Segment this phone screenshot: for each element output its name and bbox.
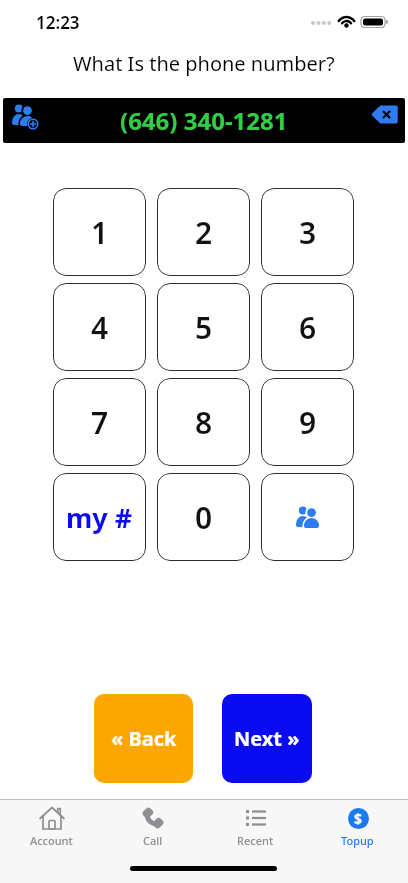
staticText: Account [30,833,73,848]
staticText: 3 [299,212,317,253]
button[interactable]: Next » [222,694,312,783]
button[interactable]: « Back [94,694,193,783]
staticText: (646) 340-1281 [120,104,288,137]
button[interactable] [3,98,53,143]
button[interactable]: Recent [204,800,306,883]
button[interactable]: $ [306,800,408,883]
button[interactable]: 7 [53,378,146,466]
staticText: my # [66,499,133,536]
staticText: Next » [234,725,300,752]
button[interactable]: 8 [157,378,250,466]
staticText: What Is the phone number? [73,50,335,77]
staticText: 5 [195,307,213,348]
staticText: 8 [195,402,213,443]
staticText: $ [354,809,363,828]
button[interactable]: 9 [261,378,354,466]
button[interactable]: 3 [261,188,354,276]
staticText: 1 [91,212,109,253]
staticText: Topup [341,833,374,848]
staticText: 9 [299,402,317,443]
button[interactable]: Account [0,800,102,883]
button[interactable]: Call [102,800,204,883]
staticText: 2 [195,212,213,253]
staticText: 0 [195,497,213,538]
staticText: « Back [111,725,177,752]
button[interactable] [361,98,405,143]
button[interactable]: 6 [261,283,354,371]
staticText: Recent [237,833,274,848]
staticText: Call [143,833,163,848]
staticText: 12:23 [36,11,80,34]
staticText: 6 [299,307,317,348]
staticText: 4 [91,307,109,348]
button[interactable]: 2 [157,188,250,276]
staticText: 7 [91,402,109,443]
button[interactable]: 1 [53,188,146,276]
button[interactable]: my # [53,473,146,561]
button[interactable]: 4 [53,283,146,371]
button[interactable] [261,473,354,561]
button[interactable]: 0 [157,473,250,561]
button[interactable]: 5 [157,283,250,371]
